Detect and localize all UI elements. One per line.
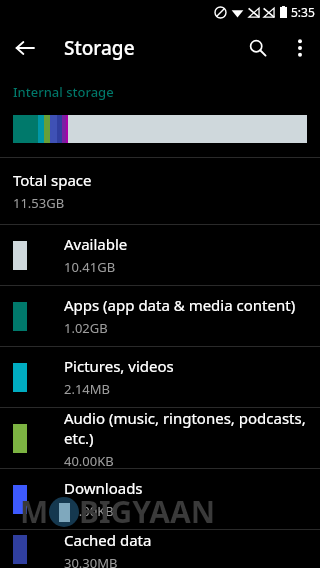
staticText: 1.02GB	[64, 319, 108, 337]
staticText: 16.00KB	[64, 502, 114, 520]
staticText: 40.00KB	[64, 452, 114, 468]
button[interactable]: Total space	[0, 158, 320, 224]
staticText: M	[20, 491, 49, 532]
staticText: 11.53GB	[13, 194, 65, 212]
button[interactable]: Search	[236, 26, 280, 70]
staticText: BIGYAAN	[79, 491, 216, 532]
staticText: 5:35	[291, 4, 315, 20]
button[interactable]: More options	[280, 28, 320, 68]
staticText: Available	[64, 234, 128, 254]
button[interactable]: Pictures, videos	[0, 347, 320, 407]
staticText: Pictures, videos	[64, 356, 174, 376]
staticText: Storage	[64, 35, 135, 61]
button[interactable]: Downloads	[0, 469, 320, 529]
button[interactable]: Cached data	[0, 530, 320, 568]
button[interactable]: Apps (app data & media content)	[0, 286, 320, 346]
staticText: Total space	[13, 170, 92, 190]
button[interactable]: Available	[0, 225, 320, 285]
staticText: Cached data	[64, 530, 152, 550]
staticText: 30.30MB	[64, 554, 118, 568]
button[interactable]: Audio (music, ringtones, podcasts, etc.)	[0, 408, 320, 468]
staticText: 2.14MB	[64, 380, 111, 398]
staticText: Apps (app data & media content)	[64, 295, 296, 315]
staticText: Downloads	[64, 478, 143, 498]
staticText: 10.41GB	[64, 258, 116, 276]
staticText: Audio (music, ringtones, podcasts, etc.)	[64, 408, 320, 448]
staticText: Internal storage	[13, 83, 114, 101]
button[interactable]: Back	[4, 27, 46, 69]
